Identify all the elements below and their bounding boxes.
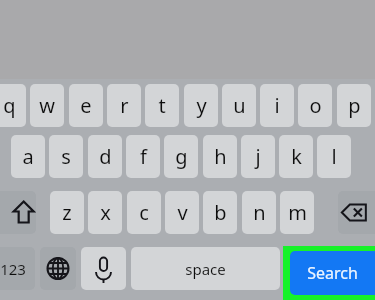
staticText: o bbox=[309, 92, 322, 119]
button[interactable]: s bbox=[49, 135, 83, 178]
button[interactable]: p bbox=[337, 84, 371, 127]
staticText: y bbox=[196, 92, 207, 119]
staticText: i bbox=[274, 92, 280, 119]
staticText: h bbox=[214, 143, 227, 170]
staticText: 123 bbox=[0, 259, 26, 279]
staticText: q bbox=[3, 92, 16, 119]
button[interactable]: h bbox=[203, 135, 237, 178]
staticText: space bbox=[185, 259, 226, 279]
staticText: t bbox=[158, 92, 166, 119]
staticText: n bbox=[253, 199, 266, 226]
button[interactable]: j bbox=[241, 135, 275, 178]
staticText: j bbox=[255, 143, 261, 170]
staticText: e bbox=[80, 92, 92, 119]
staticText: f bbox=[140, 143, 147, 170]
staticText: s bbox=[61, 143, 71, 170]
button[interactable]: z bbox=[50, 191, 84, 234]
staticText: x bbox=[100, 199, 111, 226]
button[interactable]: r bbox=[107, 84, 141, 127]
button[interactable]: w bbox=[30, 84, 64, 127]
button[interactable]: t bbox=[145, 84, 179, 127]
button[interactable]: b bbox=[203, 191, 237, 234]
button[interactable]: Backspace bbox=[338, 191, 375, 234]
staticText: v bbox=[177, 199, 188, 226]
button[interactable]: Search bbox=[290, 251, 375, 295]
button[interactable]: 123 bbox=[0, 247, 35, 290]
staticText: l bbox=[331, 143, 337, 170]
staticText: Search bbox=[307, 262, 358, 284]
button[interactable]: u bbox=[222, 84, 256, 127]
button[interactable]: q bbox=[0, 84, 26, 127]
staticText: r bbox=[120, 92, 129, 119]
button[interactable]: g bbox=[164, 135, 198, 178]
button[interactable]: e bbox=[69, 84, 103, 127]
staticText: u bbox=[233, 92, 246, 119]
staticText: b bbox=[214, 199, 227, 226]
button[interactable]: k bbox=[279, 135, 313, 178]
button[interactable]: Switch keyboard bbox=[40, 247, 76, 290]
button[interactable]: l bbox=[317, 135, 351, 178]
button[interactable]: m bbox=[280, 191, 314, 234]
staticText: c bbox=[139, 199, 149, 226]
staticText: k bbox=[291, 143, 302, 170]
staticText: a bbox=[22, 143, 34, 170]
button[interactable]: space bbox=[131, 247, 280, 290]
button[interactable]: y bbox=[184, 84, 218, 127]
staticText: g bbox=[175, 143, 188, 170]
button[interactable]: d bbox=[88, 135, 122, 178]
button[interactable]: o bbox=[298, 84, 332, 127]
staticText: d bbox=[99, 143, 112, 170]
button[interactable]: n bbox=[242, 191, 276, 234]
button[interactable]: f bbox=[126, 135, 160, 178]
staticText: z bbox=[62, 199, 72, 226]
button[interactable]: x bbox=[88, 191, 122, 234]
staticText: p bbox=[348, 92, 361, 119]
button[interactable]: i bbox=[260, 84, 294, 127]
staticText: w bbox=[39, 92, 55, 119]
staticText: m bbox=[288, 199, 307, 226]
button[interactable]: a bbox=[11, 135, 45, 178]
button[interactable]: Shift bbox=[0, 191, 36, 234]
button[interactable]: v bbox=[165, 191, 199, 234]
button[interactable]: c bbox=[127, 191, 161, 234]
button[interactable]: Dictation bbox=[81, 247, 126, 290]
